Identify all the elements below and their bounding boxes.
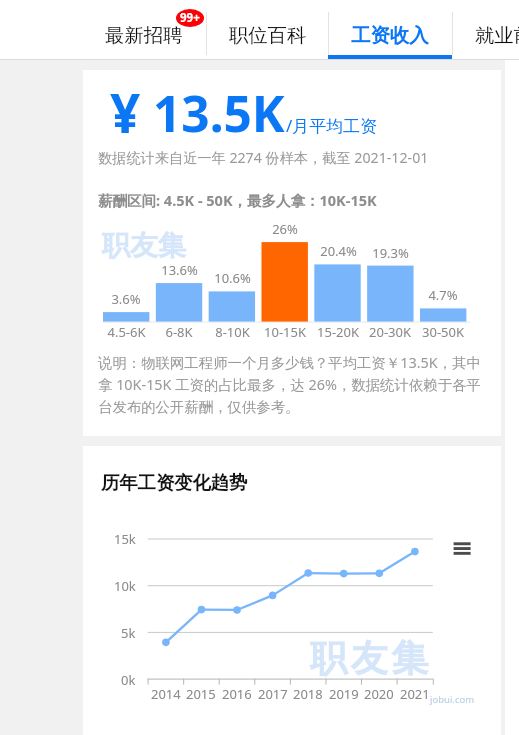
staticText: 13.6% <box>161 261 198 279</box>
staticText: 99+ <box>180 10 200 26</box>
staticText: 就业前景 <box>475 23 519 47</box>
staticText: 职友集 <box>102 228 186 263</box>
staticText: 工资收入 <box>351 23 429 47</box>
staticText: 2020 <box>364 685 394 703</box>
staticText: 2014 <box>151 685 181 703</box>
staticText: 13.5K <box>153 79 285 146</box>
staticText: 15-20K <box>317 323 359 341</box>
staticText: 5k <box>121 624 136 642</box>
staticText: 20.4% <box>320 242 357 260</box>
staticText: 20-30K <box>369 323 411 341</box>
staticText: 3.6% <box>111 290 141 308</box>
staticText: 4.7% <box>428 286 458 304</box>
staticText: 历年工资变化趋势 <box>101 471 248 494</box>
staticText: 2017 <box>258 685 288 703</box>
staticText: 2015 <box>186 685 216 703</box>
staticText: 10.6% <box>214 269 251 287</box>
other: 99+ new jobs <box>176 9 204 27</box>
staticText: 6-8K <box>165 323 193 341</box>
staticText: jobui.com <box>430 693 475 706</box>
staticText: 10k <box>114 577 136 595</box>
button[interactable]: 最新招聘 <box>81 0 206 59</box>
staticText: 10-15K <box>264 323 306 341</box>
staticText: 2019 <box>329 685 359 703</box>
staticText: 2016 <box>222 685 252 703</box>
staticText: 19.3% <box>372 244 409 262</box>
staticText: 4.5-6K <box>107 323 146 341</box>
staticText: 职位百科 <box>229 23 307 47</box>
staticText: 30-50K <box>422 323 464 341</box>
button[interactable]: 职位百科 <box>206 0 329 59</box>
staticText: 26% <box>272 220 298 238</box>
staticText: 2021 <box>400 685 430 703</box>
staticText: 最新招聘 <box>105 23 183 47</box>
staticText: 2018 <box>293 685 323 703</box>
staticText: 0k <box>121 671 136 689</box>
staticText: ¥ <box>110 76 141 148</box>
staticText: 薪酬区间: 4.5K - 50K，最多人拿：10K-15K <box>98 190 377 210</box>
staticText: /月平均工资 <box>286 114 378 137</box>
staticText: 8-10K <box>215 323 250 341</box>
button[interactable]: 就业前景 <box>452 0 519 59</box>
staticText: 数据统计来自近一年 2274 份样本，截至 2021-12-01 <box>98 148 429 167</box>
staticText: 15k <box>114 530 136 548</box>
staticText: 职友集 <box>310 635 433 682</box>
button[interactable]: Chart menu <box>450 536 474 560</box>
staticText: 说明：物联网工程师一个月多少钱？平均工资￥13.5K，其中 拿 10K-15K … <box>98 353 488 416</box>
button[interactable]: 工资收入 <box>328 0 452 59</box>
